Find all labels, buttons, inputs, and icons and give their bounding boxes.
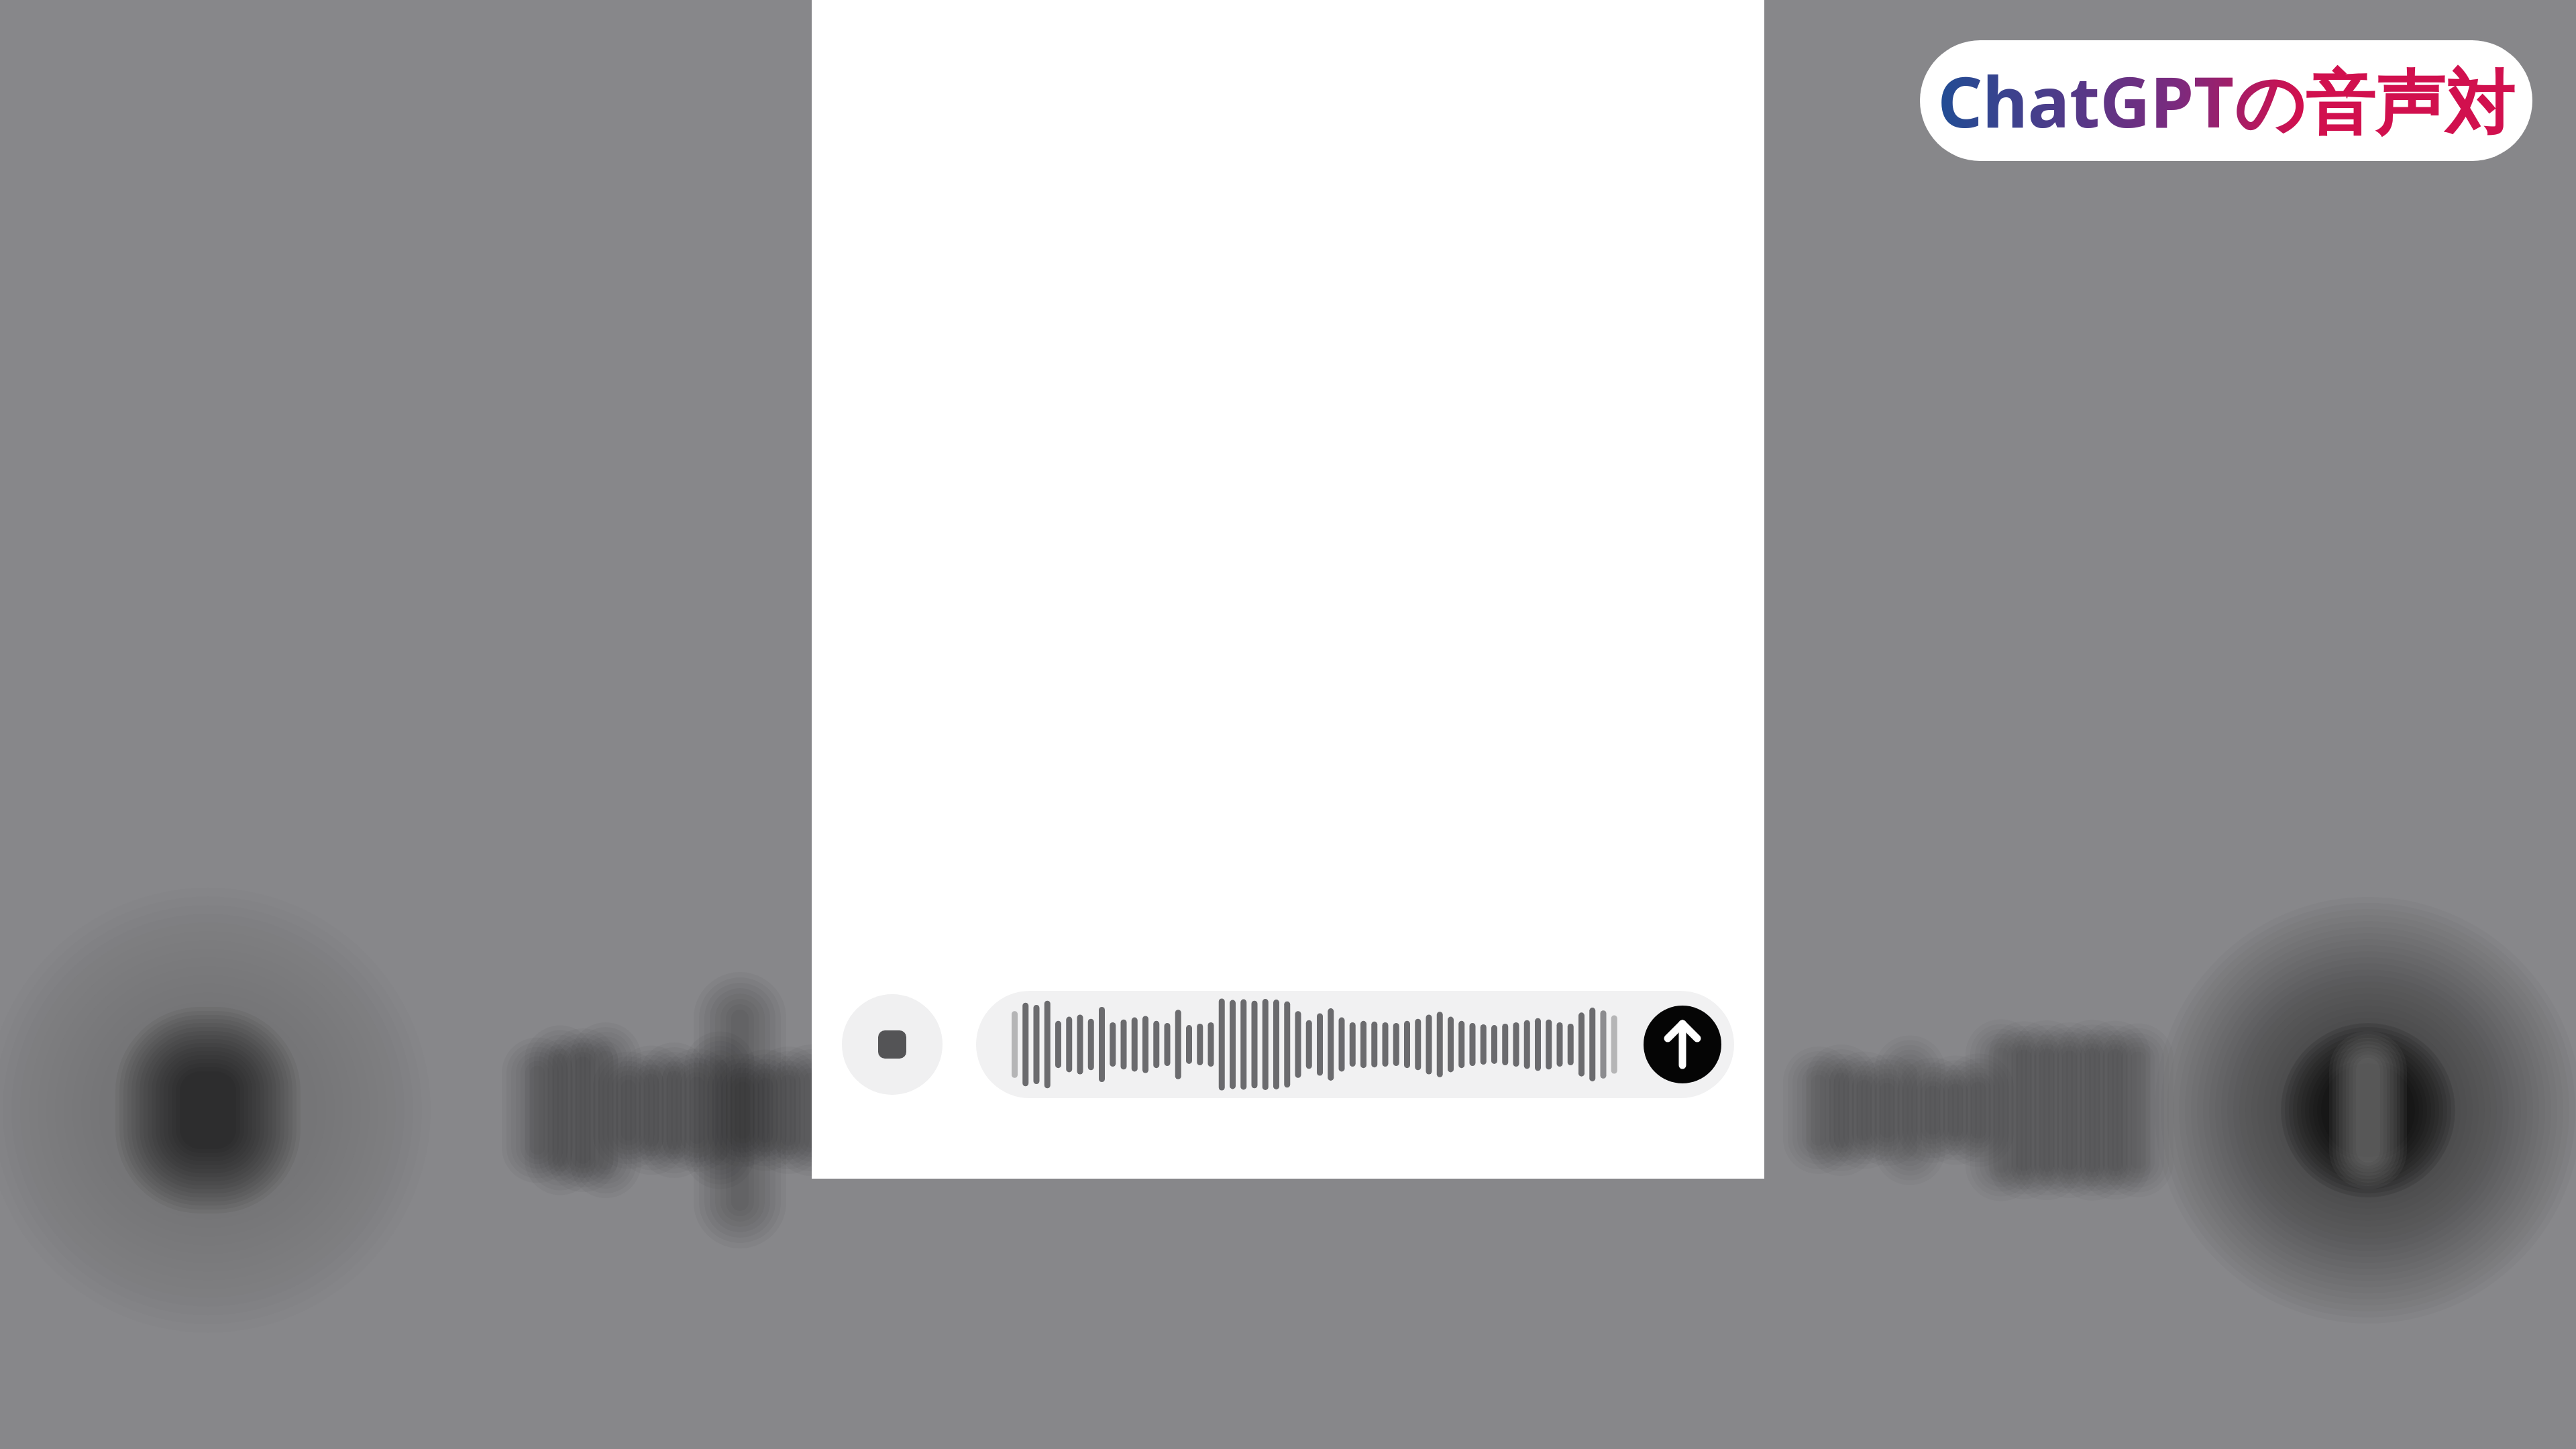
button[interactable]: Voice message waveform (976, 991, 1734, 1098)
button[interactable]: Send (1644, 1006, 1721, 1083)
button[interactable]: Stop recording (842, 994, 943, 1095)
staticText: ChatGPTの音声対話 (1920, 53, 2532, 148)
button[interactable]: ChatGPTの音声対話 (1920, 40, 2532, 161)
